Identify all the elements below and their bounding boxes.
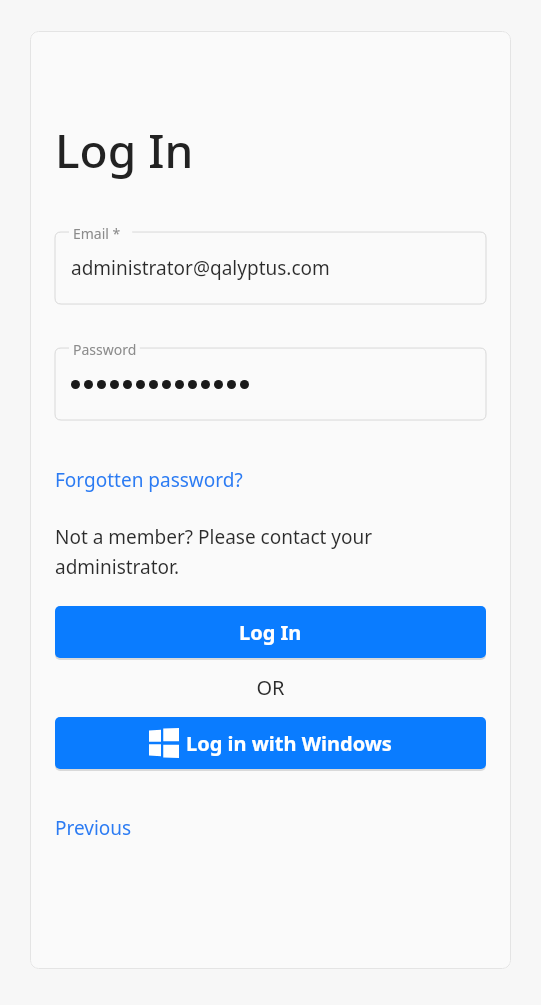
staticText: OR — [256, 674, 285, 701]
button[interactable]: Email * — [55, 232, 486, 304]
button[interactable]: Password — [55, 348, 486, 420]
button[interactable]: Previous — [55, 815, 132, 841]
button[interactable]: Forgotten password? — [55, 467, 243, 493]
button[interactable]: Log In — [55, 606, 486, 658]
staticText: Forgotten password? — [55, 467, 243, 493]
staticText: Log in with Windows — [186, 730, 392, 757]
staticText: Previous — [55, 815, 132, 841]
staticText: Log In — [55, 119, 194, 182]
staticText: administrator@qalyptus.com — [71, 255, 330, 281]
staticText: Email * — [73, 224, 121, 243]
staticText: Not a member? Please contact your admini… — [55, 524, 486, 579]
staticText: Password — [73, 340, 137, 359]
button[interactable]: Log in with Windows — [55, 717, 486, 769]
staticText: Log In — [239, 619, 302, 646]
